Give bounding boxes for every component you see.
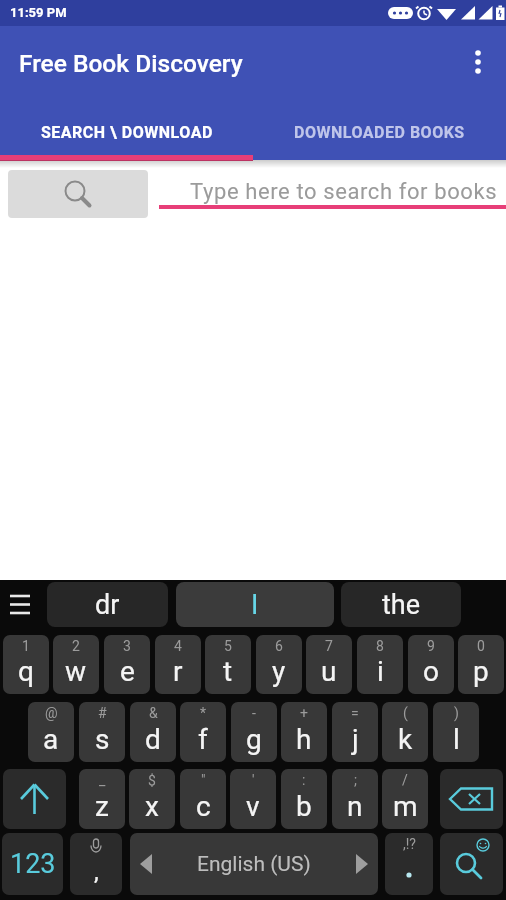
button[interactable]: the xyxy=(341,582,461,627)
button[interactable]: 5 xyxy=(205,635,251,694)
staticText: the xyxy=(382,589,421,621)
staticText: DOWNLOADED BOOKS xyxy=(294,123,465,142)
button[interactable]: # xyxy=(79,702,125,762)
staticText: 6 xyxy=(275,638,283,654)
staticText: i xyxy=(377,655,384,688)
staticText: ; xyxy=(354,772,357,788)
button[interactable]: / xyxy=(382,769,428,829)
staticText: 5 xyxy=(224,638,232,654)
button[interactable]: 3 xyxy=(104,635,150,694)
staticText: c xyxy=(196,790,211,823)
button[interactable]: I xyxy=(176,582,334,627)
staticText: 11:59 PM xyxy=(10,5,67,20)
staticText: Type here to search for books xyxy=(190,179,498,205)
button[interactable]: 0 xyxy=(458,635,504,694)
staticText: x xyxy=(145,790,159,823)
button[interactable] xyxy=(2,586,40,626)
staticText: h xyxy=(296,723,312,756)
button[interactable] xyxy=(454,38,502,86)
staticText: 123 xyxy=(10,848,56,880)
staticText: o xyxy=(423,655,439,688)
button[interactable]: 8 xyxy=(357,635,403,694)
staticText: @ xyxy=(45,705,58,721)
staticText: " xyxy=(201,772,206,788)
button[interactable]: 7 xyxy=(306,635,352,694)
button[interactable]: ) xyxy=(433,702,479,762)
staticText: 1 xyxy=(22,638,30,654)
staticText: 0 xyxy=(477,638,485,654)
button[interactable]: 9 xyxy=(408,635,454,694)
staticText: * xyxy=(200,705,207,721)
staticText: m xyxy=(393,790,418,823)
staticText: 7 xyxy=(325,638,333,654)
staticText: 8 xyxy=(376,638,384,654)
staticText: English (US) xyxy=(197,852,311,877)
staticText: p xyxy=(473,655,489,688)
button[interactable]: , xyxy=(70,833,122,895)
button[interactable]: ,!? xyxy=(385,833,433,895)
staticText: = xyxy=(351,705,359,721)
button[interactable]: 2 xyxy=(53,635,99,694)
button[interactable]: ( xyxy=(382,702,428,762)
staticText: 2 xyxy=(72,638,80,654)
button[interactable]: ; xyxy=(332,769,378,829)
staticText: u xyxy=(321,655,337,688)
staticText: a xyxy=(43,723,59,756)
staticText: z xyxy=(95,790,109,823)
staticText: q xyxy=(18,655,34,688)
staticText: s xyxy=(95,723,110,756)
staticText: k xyxy=(398,723,413,756)
button[interactable]: & xyxy=(130,702,176,762)
staticText: v xyxy=(246,790,260,823)
button[interactable] xyxy=(440,833,503,895)
staticText: I xyxy=(251,589,259,621)
button[interactable]: = xyxy=(332,702,378,762)
staticText: 4 xyxy=(174,638,182,654)
staticText: $ xyxy=(148,772,156,788)
staticText: + xyxy=(300,705,308,721)
staticText: y xyxy=(272,655,286,688)
staticText: n xyxy=(347,790,363,823)
staticText: g xyxy=(246,723,262,756)
button[interactable]: SEARCH \ DOWNLOAD xyxy=(0,105,253,160)
staticText: , xyxy=(94,858,99,886)
staticText: _ xyxy=(99,772,106,788)
button[interactable]: 6 xyxy=(256,635,302,694)
staticText: 9 xyxy=(427,638,435,654)
staticText: dr xyxy=(95,589,120,621)
button[interactable]: @ xyxy=(28,702,74,762)
staticText: j xyxy=(352,723,359,756)
button[interactable]: + xyxy=(281,702,327,762)
staticText: t xyxy=(223,655,233,688)
button[interactable]: Type here to search for books xyxy=(159,166,506,210)
button[interactable] xyxy=(440,769,503,829)
staticText: SEARCH \ DOWNLOAD xyxy=(41,123,213,142)
staticText: ,!? xyxy=(403,836,416,852)
button[interactable]: English (US) xyxy=(130,833,378,895)
staticText: f xyxy=(198,723,208,756)
staticText: r xyxy=(173,655,183,688)
staticText: / xyxy=(402,772,408,788)
button[interactable] xyxy=(3,769,66,829)
button[interactable]: " xyxy=(180,769,226,829)
button[interactable]: - xyxy=(231,702,277,762)
staticText: e xyxy=(120,655,135,688)
button[interactable]: 4 xyxy=(155,635,201,694)
button[interactable]: 1 xyxy=(3,635,49,694)
staticText: w xyxy=(65,655,87,688)
button[interactable]: _ xyxy=(79,769,125,829)
button[interactable]: : xyxy=(281,769,327,829)
staticText: # xyxy=(98,705,107,721)
button[interactable]: $ xyxy=(129,769,175,829)
staticText: d xyxy=(145,723,161,756)
button[interactable]: dr xyxy=(47,582,168,627)
button[interactable] xyxy=(8,170,148,218)
staticText: ( xyxy=(403,705,408,721)
button[interactable]: * xyxy=(180,702,226,762)
staticText: - xyxy=(252,705,256,721)
staticText: Free Book Discovery xyxy=(19,49,243,78)
button[interactable]: ' xyxy=(230,769,276,829)
button[interactable]: 123 xyxy=(2,833,63,895)
staticText: 3 xyxy=(123,638,131,654)
button[interactable]: DOWNLOADED BOOKS xyxy=(253,105,506,160)
